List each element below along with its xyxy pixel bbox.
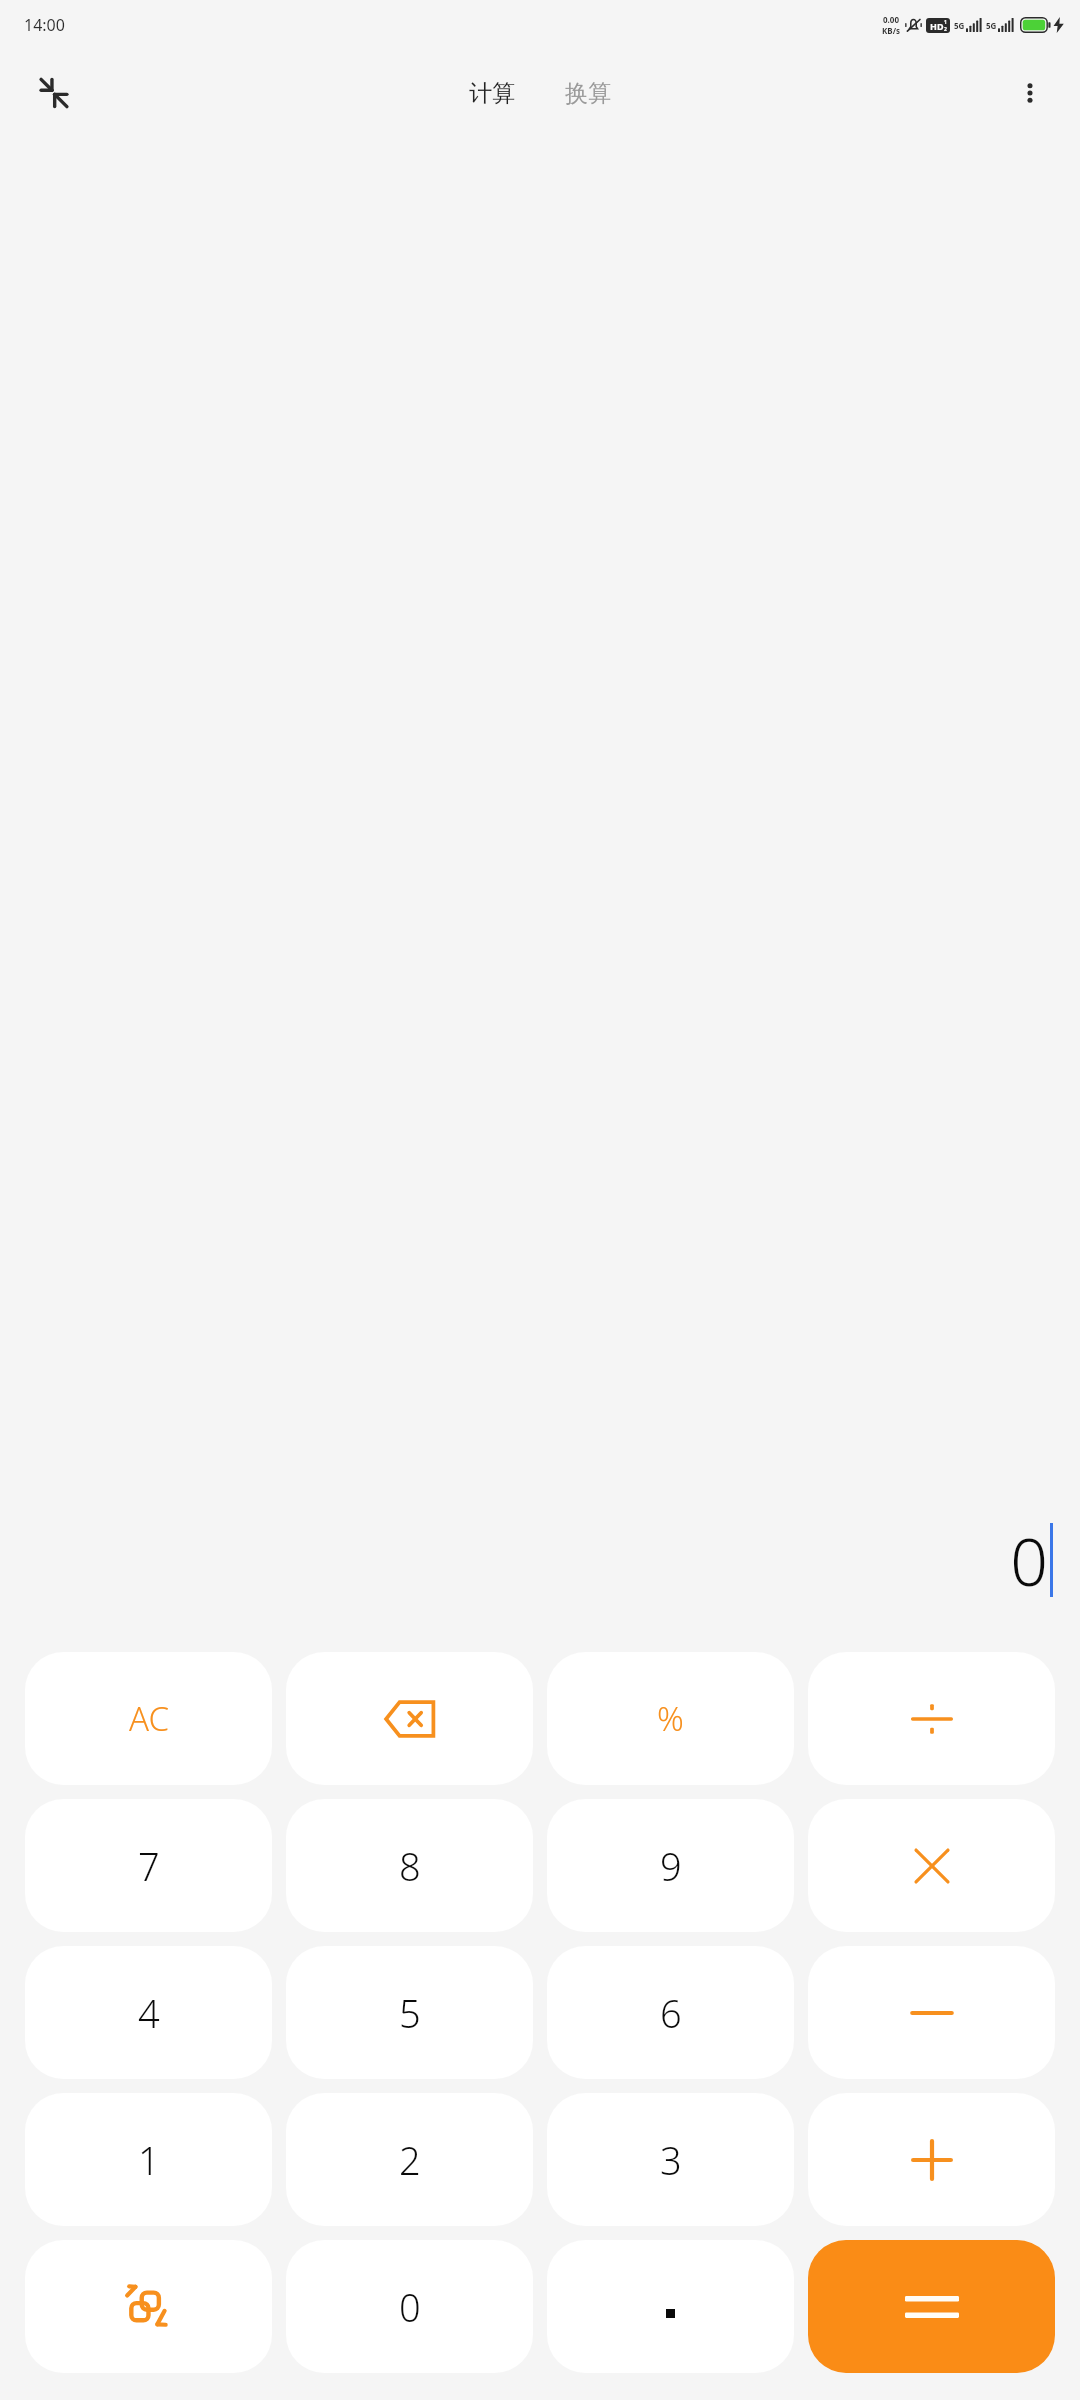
staticText: 9 bbox=[660, 1840, 682, 1892]
button[interactable]: 计算 bbox=[459, 73, 525, 114]
button[interactable]: 8 bbox=[286, 1799, 533, 1932]
staticText: AC bbox=[129, 1696, 169, 1741]
button[interactable] bbox=[808, 2240, 1055, 2373]
button[interactable] bbox=[547, 2240, 794, 2373]
staticText: 0 bbox=[1010, 1515, 1048, 1605]
staticText: 5G bbox=[986, 20, 997, 31]
staticText: 1 bbox=[138, 2134, 160, 2186]
button[interactable]: % bbox=[547, 1652, 794, 1785]
button[interactable] bbox=[808, 2093, 1055, 2226]
staticText: 2 bbox=[399, 2134, 421, 2186]
staticText: KB/s bbox=[882, 25, 900, 36]
button[interactable]: Backspace bbox=[286, 1652, 533, 1785]
staticText: 8 bbox=[399, 1840, 421, 1892]
staticText: 7 bbox=[138, 1840, 160, 1892]
staticText: 5 bbox=[399, 1987, 421, 2039]
staticText: 1 bbox=[944, 19, 947, 26]
button[interactable]: Collapse bbox=[26, 65, 82, 121]
button[interactable]: 0 bbox=[286, 2240, 533, 2373]
button[interactable]: 5 bbox=[286, 1946, 533, 2079]
button[interactable]: 6 bbox=[547, 1946, 794, 2079]
staticText: 2 bbox=[944, 26, 947, 33]
staticText: 6 bbox=[660, 1987, 682, 2039]
button[interactable] bbox=[808, 1652, 1055, 1785]
button[interactable]: 7 bbox=[25, 1799, 272, 1932]
button[interactable]: AC bbox=[25, 1652, 272, 1785]
staticText: 计算 bbox=[469, 79, 515, 108]
button[interactable] bbox=[808, 1799, 1055, 1932]
staticText: % bbox=[657, 1696, 684, 1741]
button[interactable]: 9 bbox=[547, 1799, 794, 1932]
button[interactable]: 1 bbox=[25, 2093, 272, 2226]
button[interactable]: 换算 bbox=[555, 73, 621, 114]
button[interactable]: 2 bbox=[286, 2093, 533, 2226]
staticText: 0.00 bbox=[883, 14, 899, 25]
staticText: 换算 bbox=[565, 79, 611, 108]
button[interactable]: 3 bbox=[547, 2093, 794, 2226]
button[interactable]: 4 bbox=[25, 1946, 272, 2079]
staticText: 5G bbox=[954, 20, 965, 31]
staticText: 0 bbox=[399, 2281, 421, 2333]
staticText: 3 bbox=[660, 2134, 682, 2186]
staticText: 4 bbox=[138, 1987, 160, 2039]
button[interactable]: More options bbox=[1002, 65, 1058, 121]
staticText: 14:00 bbox=[24, 14, 65, 36]
button[interactable]: Scientific mode bbox=[25, 2240, 272, 2373]
button[interactable] bbox=[808, 1946, 1055, 2079]
staticText: HD bbox=[930, 20, 944, 32]
